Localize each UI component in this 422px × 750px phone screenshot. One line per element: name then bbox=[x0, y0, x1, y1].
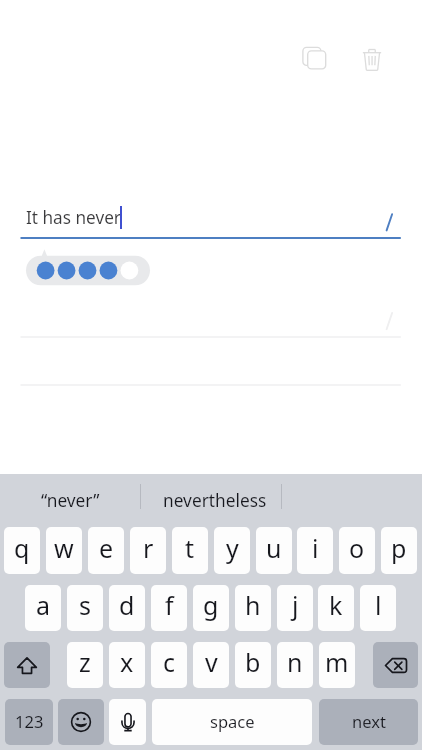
button[interactable]: o bbox=[339, 527, 375, 574]
staticText: o bbox=[349, 531, 365, 565]
staticText: h bbox=[245, 588, 261, 622]
button[interactable]: h bbox=[235, 585, 271, 631]
button[interactable]: q bbox=[4, 527, 40, 574]
button[interactable]: 123 bbox=[5, 699, 53, 745]
button[interactable]: Emoji keyboard bbox=[58, 699, 104, 745]
button[interactable]: space bbox=[152, 699, 312, 745]
staticText: g bbox=[203, 588, 219, 622]
button[interactable]: next bbox=[319, 699, 418, 745]
staticText: space bbox=[210, 710, 255, 732]
staticText: i bbox=[312, 531, 319, 565]
button[interactable]: y bbox=[214, 527, 250, 574]
staticText: a bbox=[36, 588, 51, 622]
button[interactable]: i bbox=[297, 527, 333, 574]
staticText: nevertheless bbox=[163, 489, 267, 513]
button[interactable]: l bbox=[360, 585, 396, 631]
button[interactable]: r bbox=[130, 527, 166, 574]
staticText: s bbox=[79, 588, 91, 622]
button[interactable]: m bbox=[319, 642, 355, 688]
staticText: t bbox=[185, 531, 195, 565]
staticText: b bbox=[245, 645, 261, 679]
staticText: p bbox=[391, 531, 407, 565]
button[interactable]: t bbox=[172, 527, 208, 574]
staticText: n bbox=[287, 645, 303, 679]
button[interactable]: x bbox=[109, 642, 145, 688]
button[interactable]: k bbox=[318, 585, 354, 631]
button[interactable]: Voice input bbox=[109, 699, 146, 745]
staticText: r bbox=[143, 531, 154, 565]
staticText: q bbox=[14, 531, 30, 565]
button[interactable]: “never” bbox=[0, 475, 140, 527]
staticText: c bbox=[163, 645, 176, 679]
button[interactable]: z bbox=[67, 642, 103, 688]
staticText: w bbox=[54, 531, 74, 565]
button[interactable]: d bbox=[109, 585, 145, 631]
staticText: m bbox=[325, 645, 349, 679]
button[interactable]: s bbox=[67, 585, 103, 631]
staticText: l bbox=[375, 588, 382, 622]
button[interactable]: Shift bbox=[4, 642, 50, 688]
button[interactable]: Stroke width bbox=[26, 249, 150, 286]
button[interactable]: n bbox=[277, 642, 313, 688]
button[interactable]: nevertheless bbox=[145, 475, 285, 527]
staticText: d bbox=[119, 588, 135, 622]
button[interactable]: w bbox=[46, 527, 82, 574]
staticText: 123 bbox=[15, 710, 44, 732]
staticText: z bbox=[79, 645, 91, 679]
staticText: “never” bbox=[41, 489, 100, 513]
button[interactable]: v bbox=[193, 642, 229, 688]
button[interactable]: b bbox=[235, 642, 271, 688]
button[interactable]: j bbox=[277, 585, 313, 631]
button[interactable]: p bbox=[381, 527, 417, 574]
button[interactable]: c bbox=[151, 642, 187, 688]
button[interactable]: Backspace bbox=[373, 642, 418, 688]
staticText: j bbox=[292, 588, 299, 622]
button[interactable]: e bbox=[88, 527, 124, 574]
staticText: u bbox=[266, 531, 282, 565]
button[interactable]: u bbox=[256, 527, 292, 574]
staticText: next bbox=[352, 710, 386, 732]
staticText: e bbox=[99, 531, 114, 565]
staticText: x bbox=[120, 645, 134, 679]
staticText: f bbox=[165, 588, 174, 622]
button[interactable]: Delete note bbox=[348, 36, 396, 84]
staticText: v bbox=[205, 645, 218, 679]
button[interactable]: f bbox=[151, 585, 187, 631]
button[interactable]: g bbox=[193, 585, 229, 631]
button[interactable]: a bbox=[25, 585, 61, 631]
button[interactable]: Duplicate note bbox=[290, 34, 338, 82]
staticText: y bbox=[226, 531, 239, 565]
staticText: It has never bbox=[26, 206, 121, 229]
staticText: k bbox=[329, 588, 343, 622]
